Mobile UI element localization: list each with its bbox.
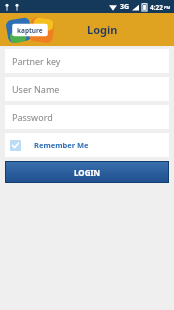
button[interactable]: User Name (5, 77, 169, 101)
staticText: Partner key (12, 55, 61, 67)
staticText: 4:22 (150, 3, 163, 12)
staticText: Password (12, 111, 53, 123)
staticText: kapture (17, 26, 43, 35)
staticText: PM (164, 5, 171, 10)
button[interactable]: LOGIN (5, 161, 169, 183)
staticText: 3G (120, 2, 130, 12)
staticText: Remember Me (34, 140, 89, 150)
staticText: Login (87, 22, 118, 37)
staticText: User Name (12, 83, 60, 95)
button[interactable]: Password (5, 105, 169, 129)
button[interactable]: Remember Me (5, 133, 169, 157)
button[interactable]: Kapture logo (6, 17, 54, 43)
staticText: LOGIN (74, 167, 101, 178)
button[interactable]: Partner key (5, 49, 169, 73)
